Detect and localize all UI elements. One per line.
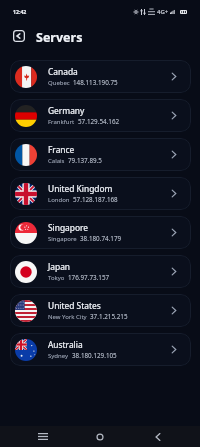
button[interactable]: Singapore <box>10 216 191 249</box>
button[interactable]: United States <box>10 294 191 327</box>
staticText: London <box>48 196 70 204</box>
staticText: Australia <box>48 339 83 350</box>
staticText: Singapore <box>48 222 89 233</box>
staticText: New York City <box>48 313 87 321</box>
staticText: United Kingdom <box>48 183 113 194</box>
staticText: United States <box>48 300 101 311</box>
staticText: 38.180.74.179 <box>80 234 122 243</box>
staticText: Sydney <box>48 352 69 360</box>
staticText: 57.128.187.168 <box>73 195 118 204</box>
staticText: 37.1.215.215 <box>90 312 128 321</box>
staticText: 12:42 <box>13 8 27 15</box>
button[interactable]: Germany <box>10 99 191 132</box>
button[interactable]: Japan <box>10 255 191 288</box>
staticText: Tokyo <box>48 274 65 282</box>
staticText: 4G+ <box>157 8 169 16</box>
button[interactable]: Home <box>84 426 115 447</box>
staticText: Calais <box>48 157 65 165</box>
button[interactable]: Australia <box>10 333 191 366</box>
staticText: 57.129.54.162 <box>78 117 120 126</box>
staticText: 79.137.89.5 <box>68 156 102 165</box>
button[interactable]: Back <box>142 426 173 447</box>
staticText: 176.97.73.157 <box>68 273 110 282</box>
staticText: 38.180.129.105 <box>72 351 117 360</box>
staticText: Frankfurt <box>48 118 75 126</box>
staticText: Japan <box>48 261 71 272</box>
button[interactable]: France <box>10 138 191 171</box>
button[interactable]: United Kingdom <box>10 177 191 210</box>
button[interactable]: Recents <box>27 426 58 447</box>
staticText: Singapore <box>48 235 77 243</box>
button[interactable]: Canada <box>10 60 191 93</box>
staticText: Canada <box>48 66 78 77</box>
staticText: Servers <box>36 29 83 46</box>
staticText: 148.113.190.75 <box>73 78 118 87</box>
staticText: France <box>48 144 75 155</box>
staticText: Germany <box>48 105 85 116</box>
button[interactable]: Back <box>13 30 25 42</box>
staticText: Quebec <box>48 79 70 87</box>
